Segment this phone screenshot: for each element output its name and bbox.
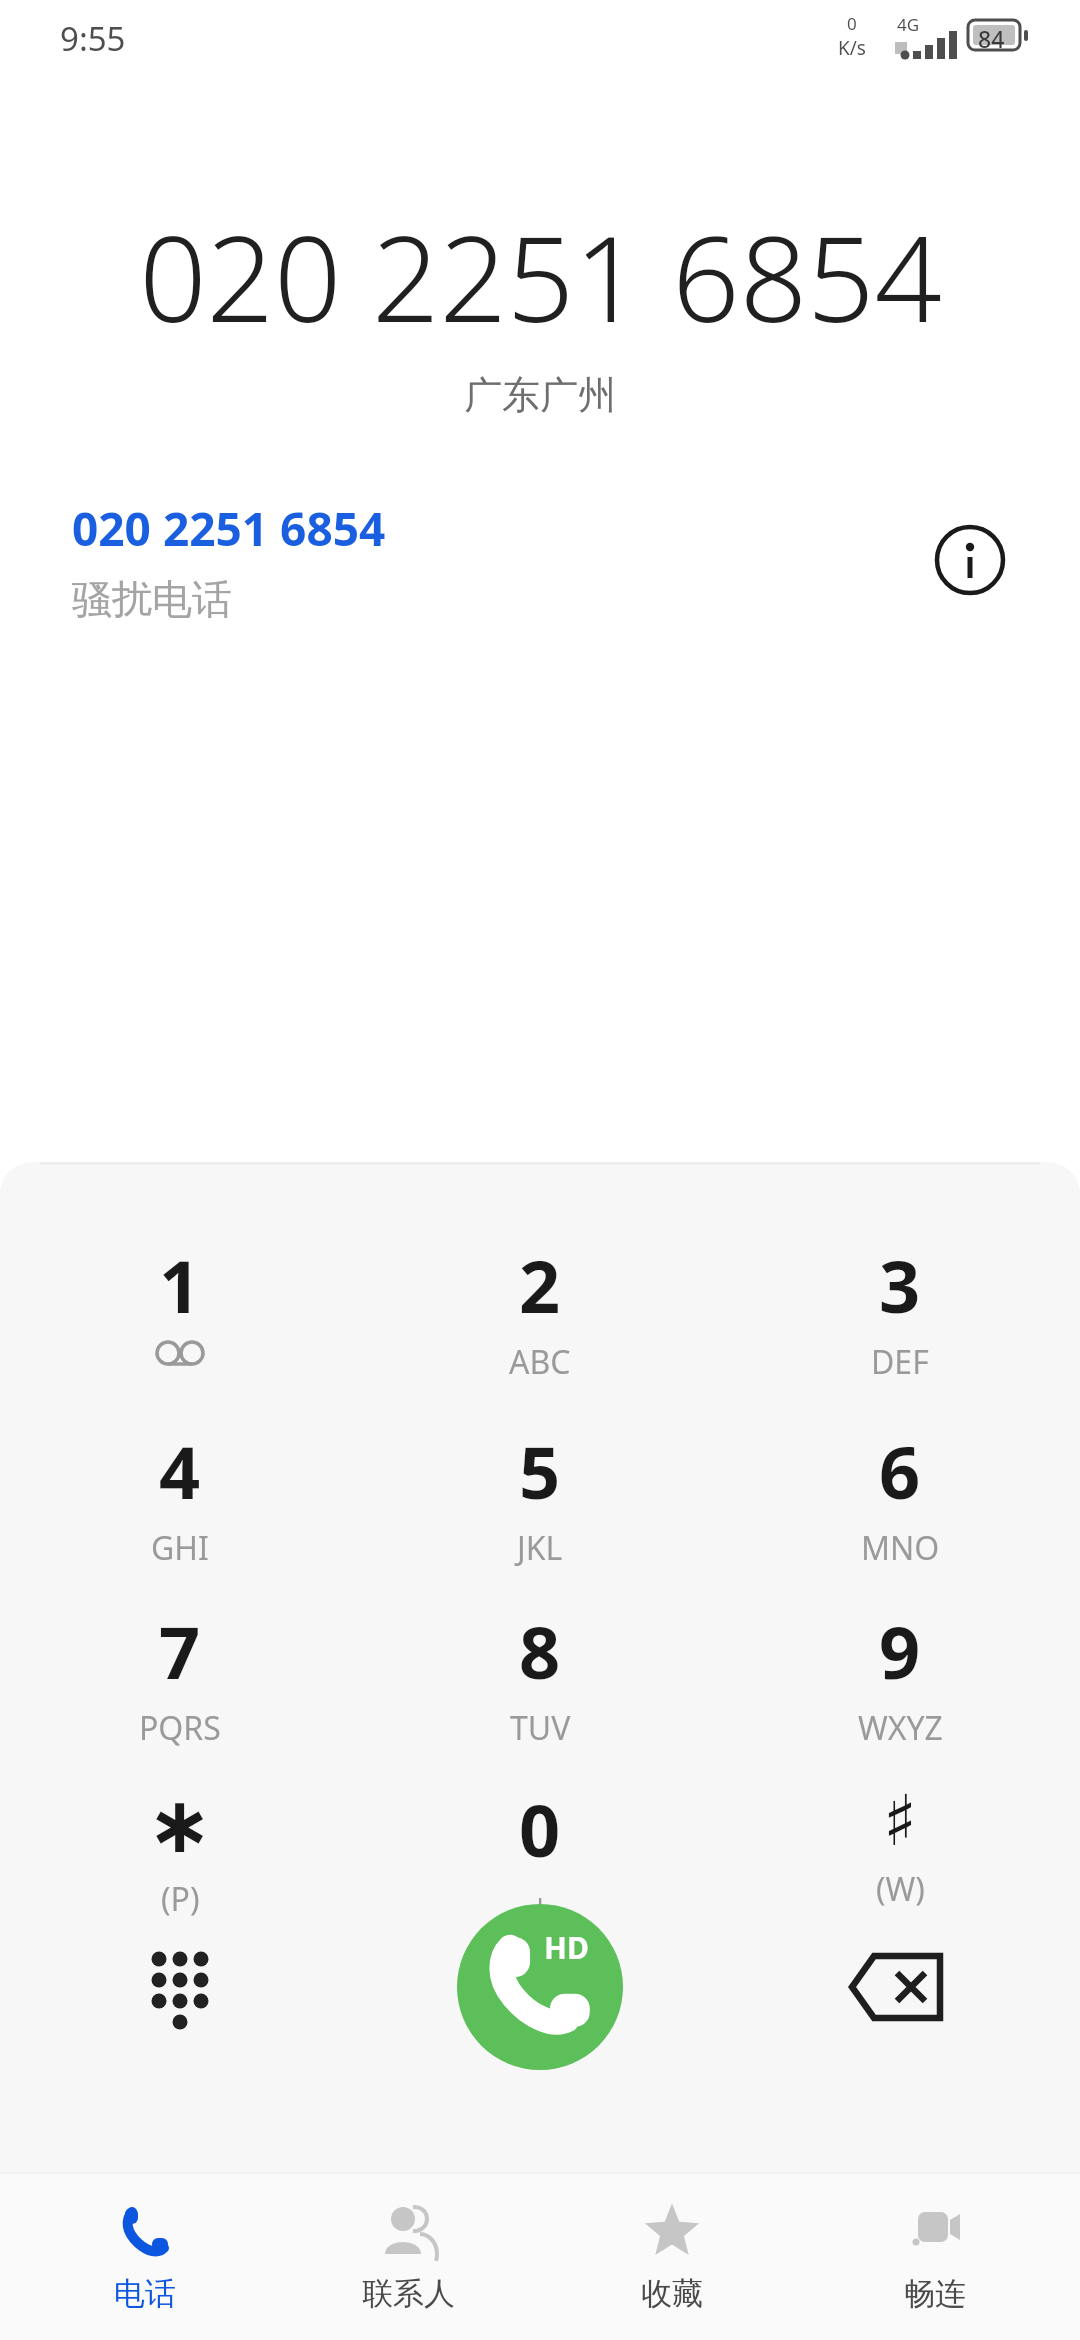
staticText: 3: [879, 1236, 921, 1334]
staticText: 5: [519, 1422, 561, 1520]
button[interactable]: 4: [0, 1422, 360, 1594]
button[interactable]: 8: [360, 1602, 720, 1774]
button[interactable]: 1: [0, 1236, 360, 1408]
button[interactable]: 5: [360, 1422, 720, 1594]
staticText: 联系人: [362, 2274, 455, 2313]
staticText: (W): [876, 1867, 925, 1911]
button[interactable]: 收藏: [554, 2174, 790, 2340]
staticText: 4: [159, 1422, 201, 1520]
button[interactable]: 6: [720, 1422, 1080, 1594]
button[interactable]: 0: [360, 1780, 720, 1952]
staticText: 6: [879, 1422, 921, 1520]
staticText: 0: [847, 12, 857, 35]
staticText: 8: [519, 1602, 561, 1700]
staticText: PQRS: [139, 1706, 221, 1750]
staticText: 电话: [114, 2274, 176, 2313]
staticText: JKL: [517, 1526, 563, 1570]
staticText: 1: [159, 1236, 201, 1334]
staticText: 7: [159, 1602, 201, 1700]
button[interactable]: 电话: [27, 2174, 263, 2340]
staticText: ABC: [509, 1340, 571, 1384]
staticText: K/s: [838, 35, 866, 61]
staticText: +: [531, 1884, 550, 1928]
staticText: 收藏: [641, 2274, 703, 2313]
button[interactable]: ∗: [0, 1780, 360, 1952]
staticText: 畅连: [904, 2274, 966, 2313]
staticText: 4G: [897, 13, 920, 36]
staticText: WXYZ: [858, 1706, 943, 1750]
staticText: MNO: [861, 1526, 940, 1570]
button[interactable]: Info: [922, 512, 1018, 608]
staticText: 0: [519, 1780, 561, 1878]
button[interactable]: Keypad: [0, 1862, 360, 2112]
button[interactable]: 联系人: [290, 2174, 526, 2340]
staticText: GHI: [151, 1526, 209, 1570]
staticText: 9: [879, 1602, 921, 1700]
staticText: 广东广州: [464, 371, 616, 419]
button[interactable]: 020 2251 6854: [0, 480, 1080, 640]
staticText: HD: [544, 1927, 589, 1968]
staticText: TUV: [510, 1706, 571, 1750]
staticText: ♯: [883, 1780, 917, 1861]
staticText: ∗: [147, 1780, 213, 1871]
button[interactable]: Call: [457, 1904, 623, 2070]
staticText: 020 2251 6854: [72, 497, 386, 560]
staticText: 84: [978, 23, 1005, 54]
staticText: 020 2251 6854: [139, 196, 942, 357]
button[interactable]: 9: [720, 1602, 1080, 1774]
button[interactable]: 3: [720, 1236, 1080, 1408]
staticText: 9:55: [60, 16, 126, 61]
staticText: DEF: [871, 1340, 929, 1384]
button[interactable]: 2: [360, 1236, 720, 1408]
staticText: (P): [161, 1877, 200, 1921]
button[interactable]: ♯: [720, 1780, 1080, 1952]
button[interactable]: 畅连: [817, 2174, 1053, 2340]
staticText: 2: [519, 1236, 561, 1334]
staticText: 骚扰电话: [72, 574, 232, 624]
button[interactable]: 7: [0, 1602, 360, 1774]
button[interactable]: Delete: [720, 1862, 1080, 2112]
